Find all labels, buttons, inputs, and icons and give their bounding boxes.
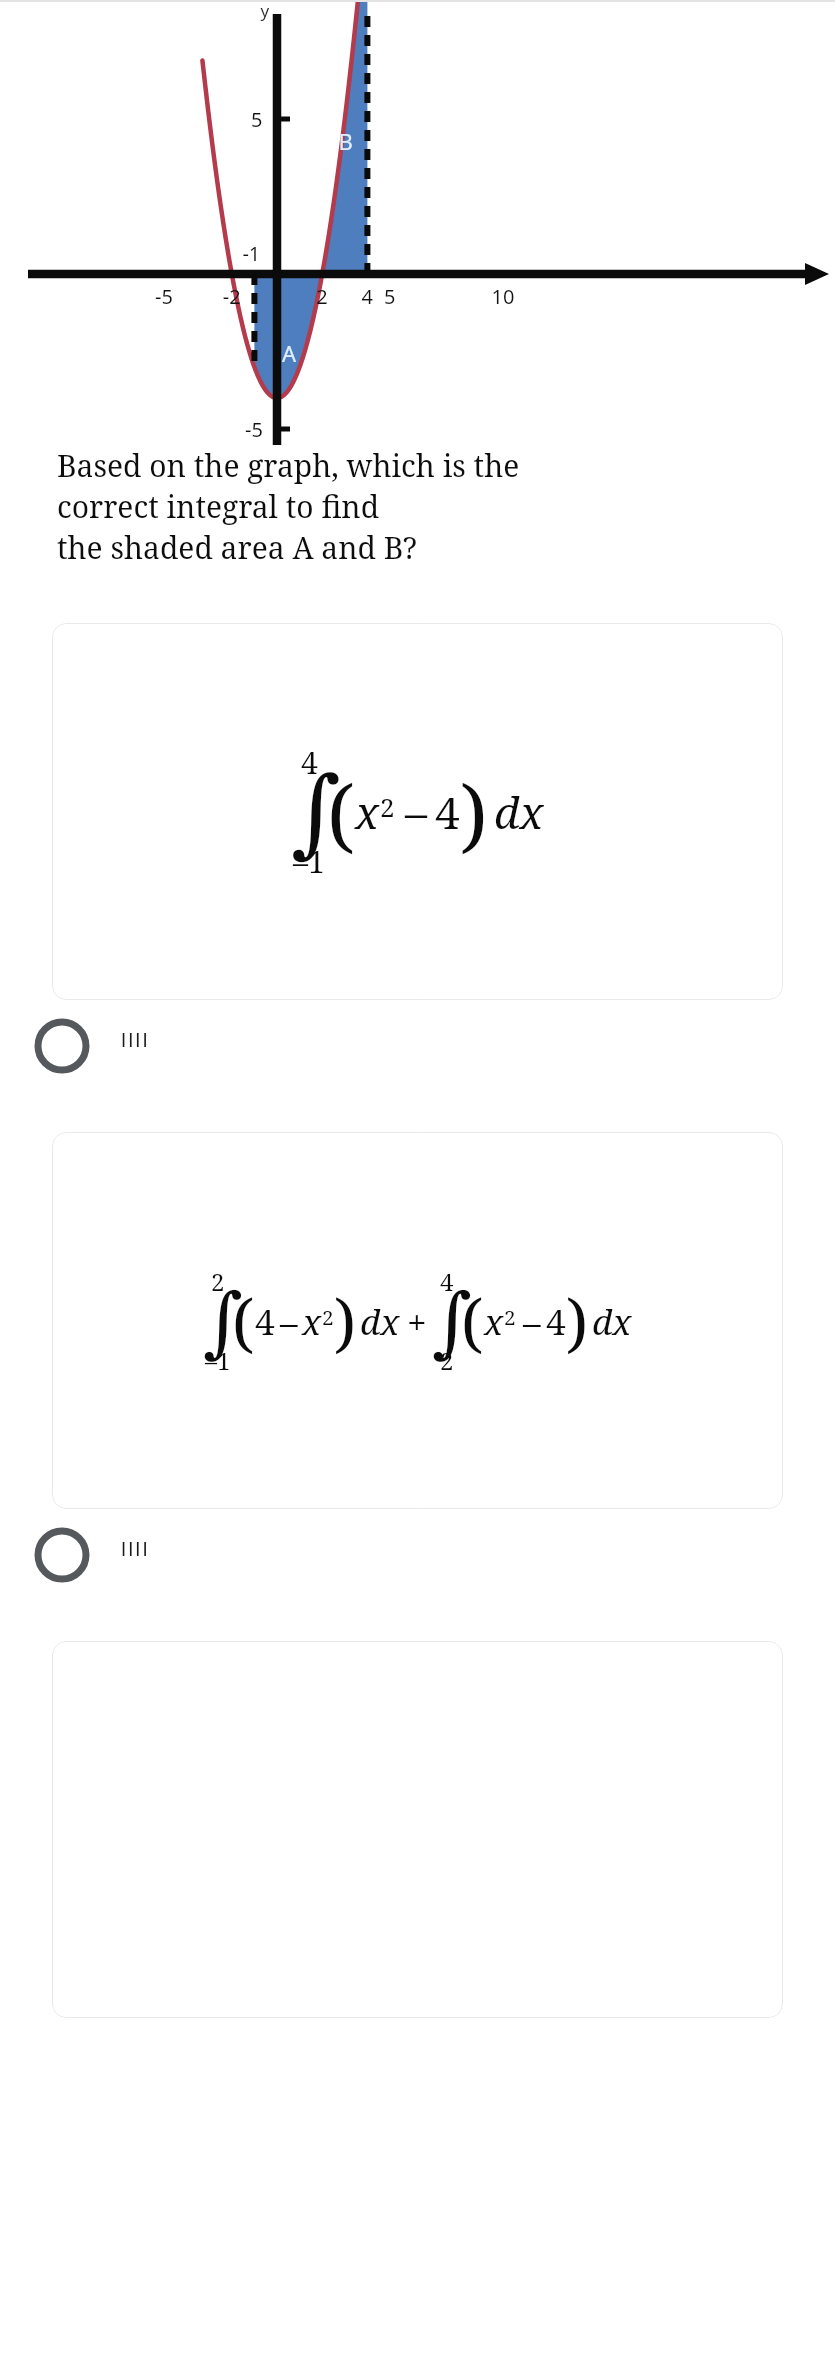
staticText: x	[302, 1297, 322, 1345]
staticText: Based on the graph, which is the	[57, 445, 520, 486]
staticText: )	[334, 1278, 357, 1365]
staticText: ∫	[203, 1277, 232, 1366]
button[interactable]: 2	[52, 1132, 783, 1509]
staticText: –	[405, 782, 427, 842]
staticText: +	[407, 1297, 427, 1345]
staticText: 2	[211, 1265, 225, 1298]
staticText: dx	[360, 1297, 400, 1345]
staticText: ∫	[432, 1277, 461, 1366]
staticText: –	[280, 1297, 298, 1345]
staticText: 2	[322, 1303, 334, 1331]
staticText: x	[484, 1297, 504, 1345]
staticText: ||||	[120, 1029, 149, 1048]
staticText: dx	[494, 782, 544, 842]
staticText: 4	[301, 742, 318, 783]
staticText: )	[566, 1278, 589, 1365]
staticText: )	[460, 758, 488, 867]
staticText: (	[327, 758, 355, 867]
staticText: 4	[546, 1297, 566, 1345]
staticText: –1	[205, 1344, 231, 1377]
staticText: the shaded area A and B?	[57, 527, 418, 568]
staticText: 2	[380, 789, 395, 824]
staticText: (	[232, 1278, 255, 1365]
staticText: 2	[504, 1303, 516, 1331]
staticText: 4	[255, 1297, 275, 1345]
staticText: 2	[440, 1344, 454, 1377]
button[interactable]: 4	[52, 623, 783, 1000]
staticText: (	[461, 1278, 484, 1365]
button[interactable]: Select this answer	[34, 1000, 835, 1092]
staticText: –	[523, 1297, 541, 1345]
staticText: 4	[440, 1265, 454, 1298]
staticText: correct integral to find	[57, 486, 380, 527]
staticText: –1	[293, 841, 325, 882]
staticText: dx	[592, 1297, 632, 1345]
staticText: 4	[435, 782, 460, 842]
staticText: ||||	[120, 1538, 149, 1557]
button[interactable]: Select this answer	[34, 1509, 835, 1601]
staticText: ∫	[291, 756, 327, 868]
staticText: x	[355, 782, 380, 842]
